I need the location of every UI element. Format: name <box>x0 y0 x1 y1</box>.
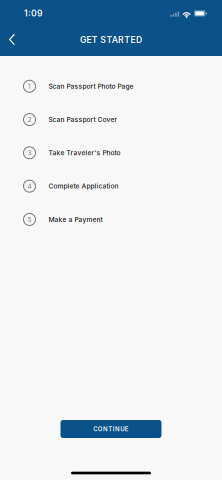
staticText: Scan Passport Photo Page <box>48 82 133 90</box>
button[interactable]: 5 <box>0 203 222 236</box>
staticText: 2 <box>27 115 31 124</box>
staticText: 5 <box>27 215 31 223</box>
staticText: Take Traveler's Photo <box>48 149 120 157</box>
button[interactable]: 4 <box>0 169 222 203</box>
button[interactable]: 3 <box>0 136 222 169</box>
staticText: Scan Passport Cover <box>48 115 117 124</box>
button[interactable]: CONTINUE <box>60 420 161 438</box>
button[interactable]: 1 <box>0 70 222 103</box>
staticText: 4 <box>27 182 31 190</box>
staticText: CONTINUE <box>93 425 129 433</box>
staticText: Complete Application <box>48 182 118 190</box>
staticText: GET STARTED <box>80 35 142 45</box>
staticText: Make a Payment <box>48 215 102 223</box>
staticText: 1 <box>28 82 31 90</box>
button[interactable]: 2 <box>0 103 222 136</box>
staticText: 3 <box>27 149 31 157</box>
staticText: 1:09 <box>24 8 43 19</box>
button[interactable]: Back <box>0 27 25 54</box>
